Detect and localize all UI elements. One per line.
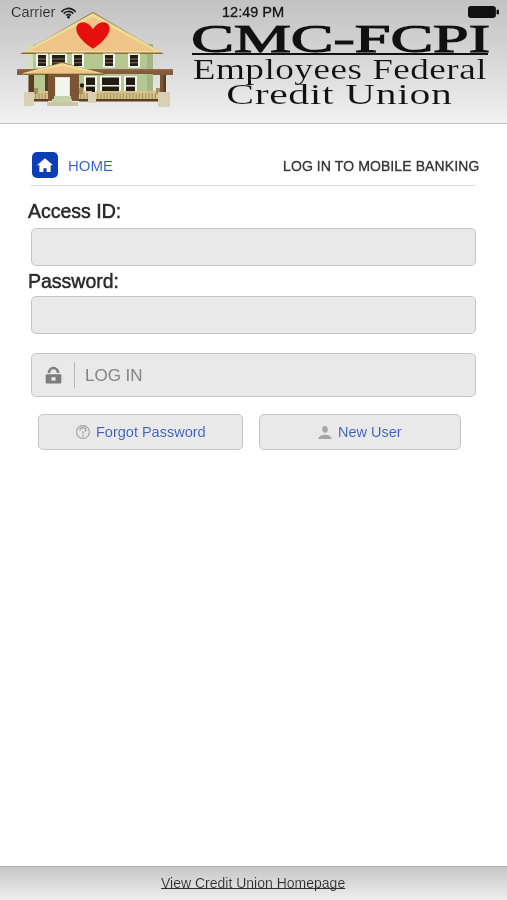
staticText: Credit Union — [226, 78, 454, 110]
staticText: HOME — [68, 157, 113, 174]
button[interactable]: HOME — [32, 152, 113, 178]
staticText: Employees Federal — [193, 53, 487, 85]
button[interactable]: Text field — [31, 296, 476, 334]
button[interactable]: Forgot Password — [38, 414, 243, 450]
staticText: Access ID: — [28, 200, 122, 222]
staticText: New User — [338, 424, 402, 440]
staticText: LOG IN — [85, 366, 143, 385]
button[interactable]: View Credit Union Homepage — [161, 875, 346, 891]
button[interactable]: New User — [259, 414, 461, 450]
button[interactable]: Text field — [31, 228, 476, 266]
staticText: Forgot Password — [96, 424, 206, 440]
staticText: CMC-FCPI — [191, 16, 490, 60]
staticText: Password: — [28, 270, 120, 292]
staticText: LOG IN TO MOBILE BANKING — [283, 158, 480, 174]
staticText: Carrier — [11, 4, 56, 20]
staticText: 12:49 PM — [222, 4, 285, 20]
button[interactable]: LOG IN — [31, 353, 476, 397]
